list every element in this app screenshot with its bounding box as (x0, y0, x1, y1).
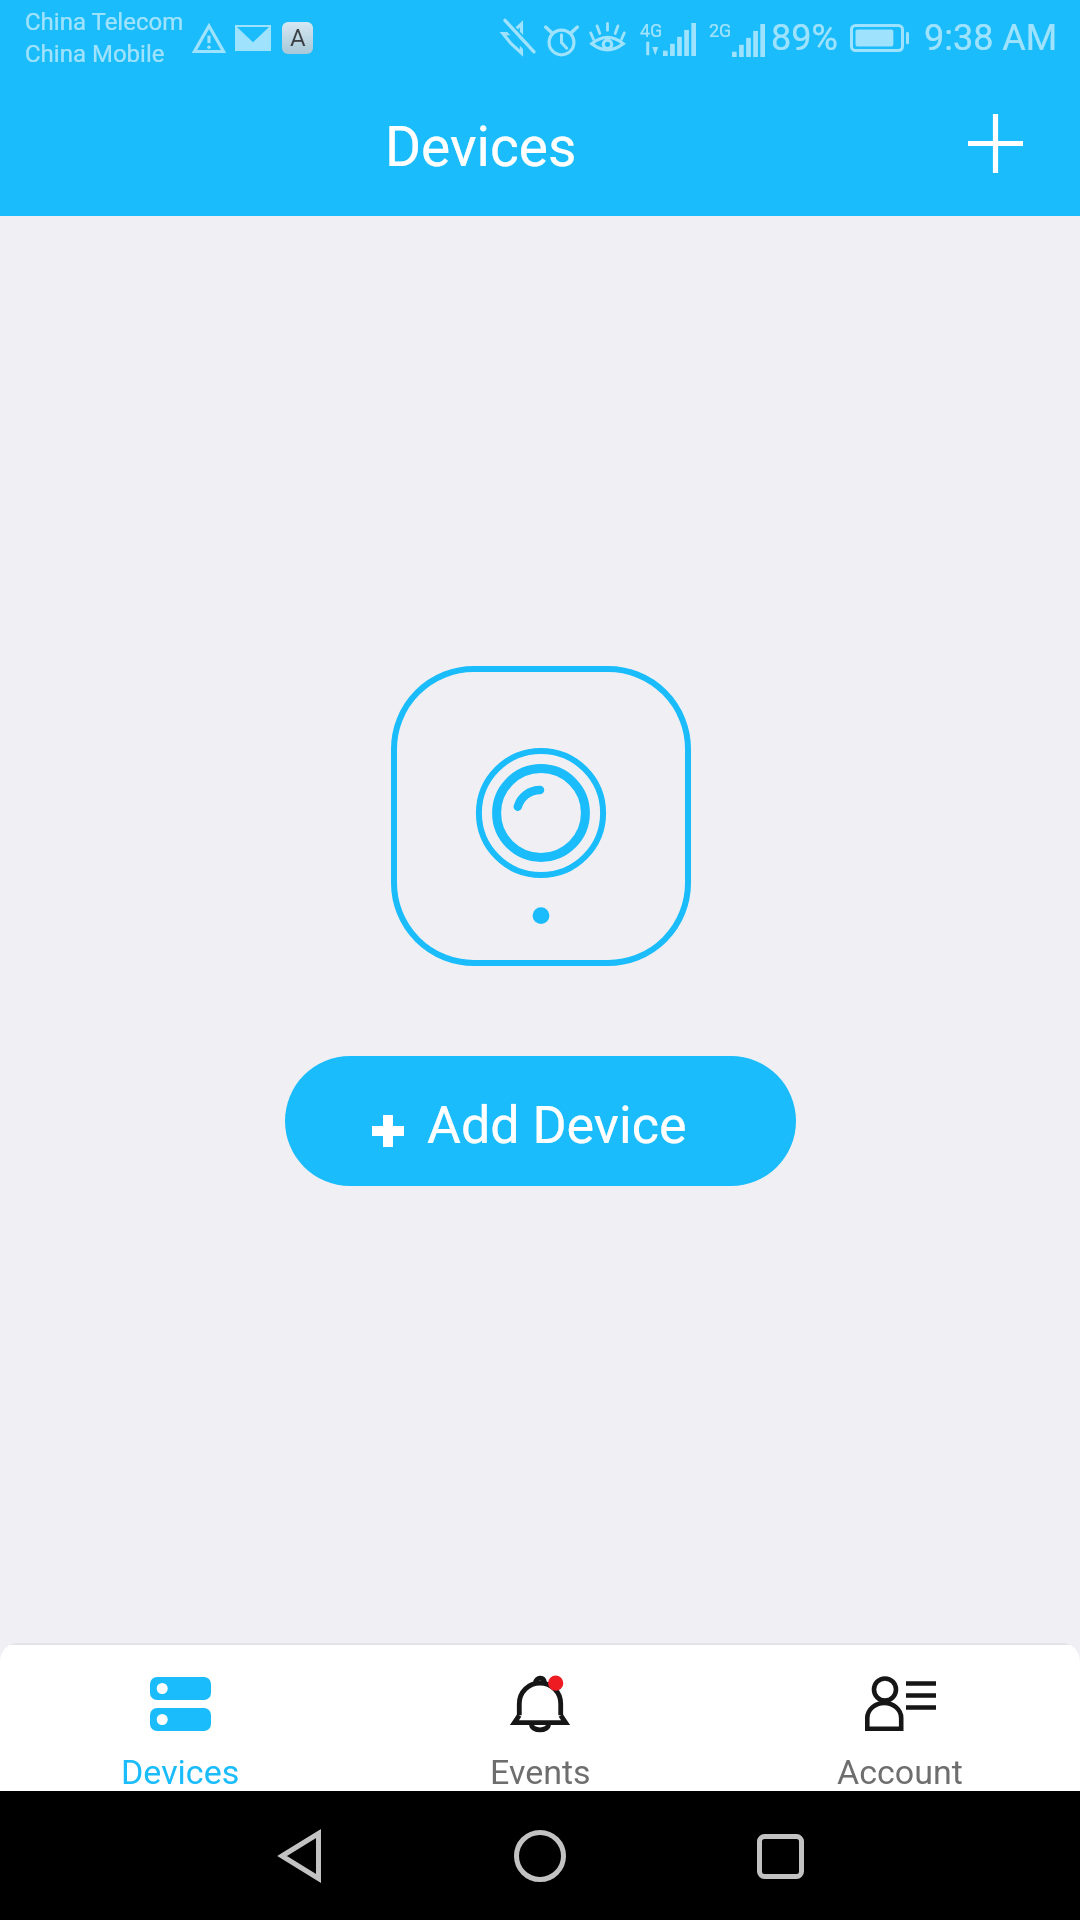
staticText: 4G (640, 20, 663, 41)
button[interactable]: Devices (0, 1645, 360, 1791)
staticText: 9:38 AM (924, 17, 1058, 59)
button[interactable]: Account (720, 1645, 1080, 1791)
button[interactable]: Add Device (285, 1056, 796, 1186)
button[interactable]: Recents (720, 1796, 840, 1916)
staticText: A (290, 24, 306, 52)
button[interactable]: Add device (940, 93, 1050, 203)
button[interactable]: Home (480, 1796, 600, 1916)
staticText: China Telecom (25, 8, 184, 36)
staticText: Account (837, 1752, 963, 1791)
staticText: China Mobile (25, 40, 165, 68)
staticText: 89% (771, 17, 838, 59)
staticText: Add Device (427, 1095, 687, 1156)
staticText: 2G (709, 20, 732, 41)
staticText: Devices (385, 115, 577, 179)
button[interactable]: Events (360, 1645, 720, 1791)
staticText: Devices (121, 1752, 240, 1791)
button[interactable]: Back (240, 1796, 360, 1916)
staticText: Events (490, 1752, 591, 1791)
